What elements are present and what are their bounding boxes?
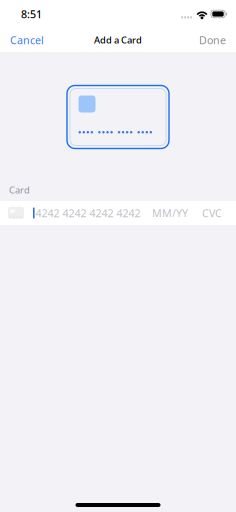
staticText: 4242 4242 4242 4242 xyxy=(36,206,141,220)
button[interactable]: 4242 4242 4242 4242 xyxy=(0,201,236,225)
button[interactable]: Cancel xyxy=(0,28,52,52)
button[interactable]: Done xyxy=(191,28,236,52)
staticText: Cancel xyxy=(10,33,44,47)
staticText: MM/YY xyxy=(152,206,188,220)
staticText: 8:51 xyxy=(21,7,42,21)
staticText: Done xyxy=(199,33,226,47)
staticText: Card xyxy=(9,184,30,196)
staticText: Add a Card xyxy=(94,34,142,46)
staticText: CVC xyxy=(202,206,222,220)
